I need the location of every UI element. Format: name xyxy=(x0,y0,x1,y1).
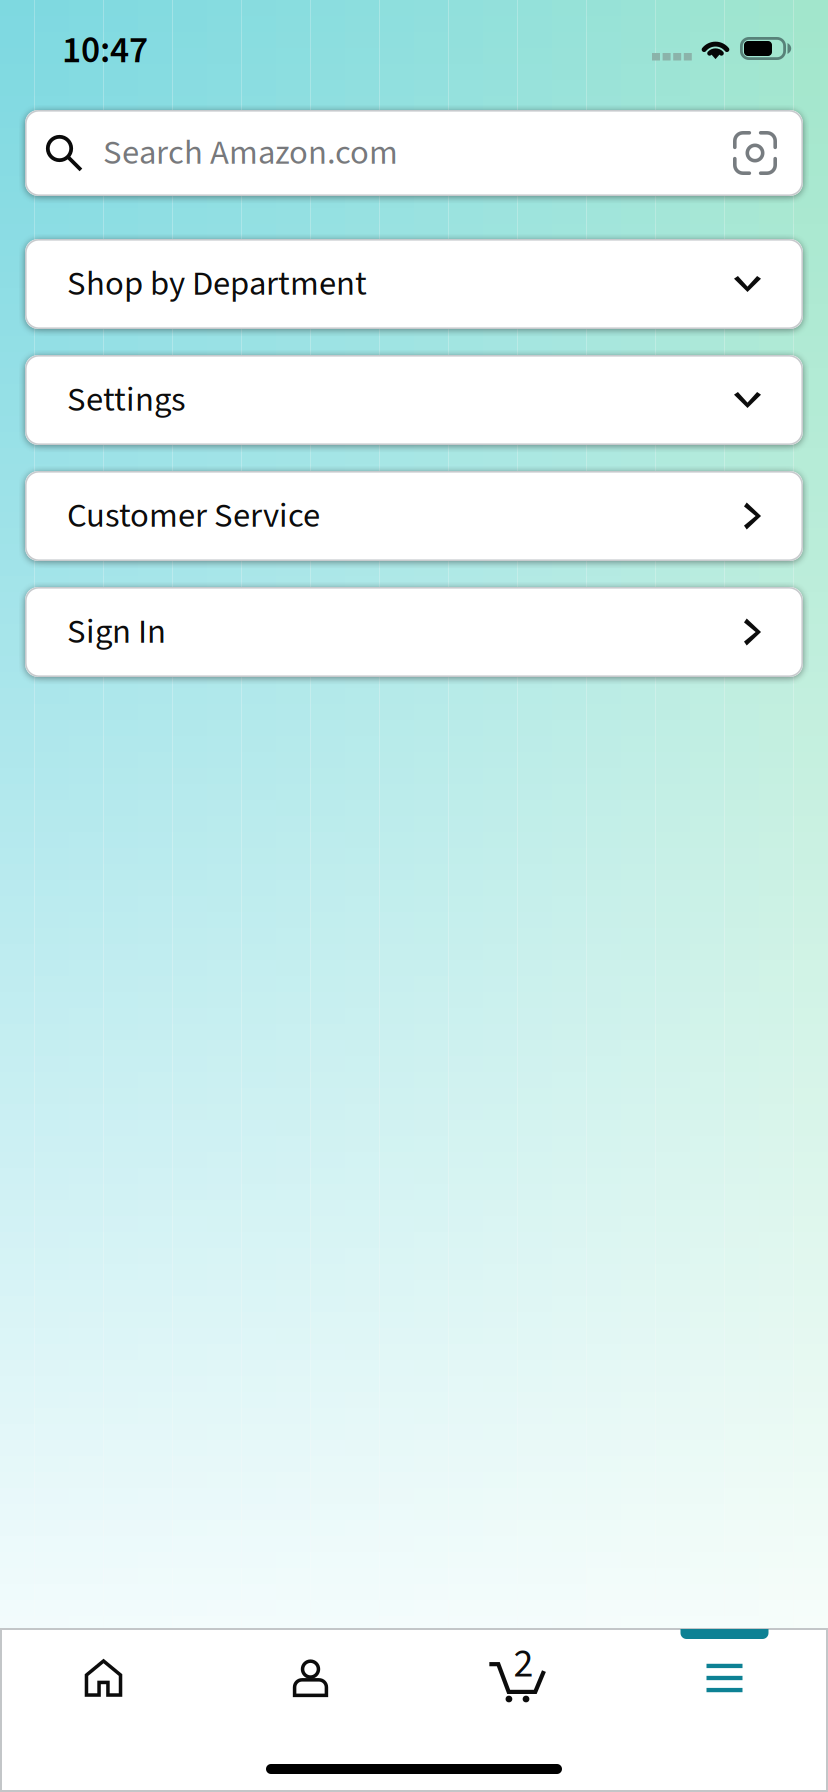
button[interactable]: Customer Service xyxy=(25,471,803,561)
staticText: Shop by Department xyxy=(67,259,367,309)
button[interactable]: Settings xyxy=(25,355,803,445)
button[interactable]: Search Amazon.com xyxy=(25,110,803,196)
staticText: 2 xyxy=(513,1635,533,1692)
button[interactable]: Your Account xyxy=(207,1639,414,1717)
button[interactable]: Home xyxy=(0,1639,207,1717)
staticText: Search Amazon.com xyxy=(103,128,398,178)
staticText: Customer Service xyxy=(67,491,320,541)
button[interactable]: Cart, 2 items xyxy=(414,1639,621,1717)
button[interactable]: Shop by Department xyxy=(25,239,803,329)
staticText: 10:47 xyxy=(62,24,148,77)
staticText: Sign In xyxy=(67,607,166,657)
staticText: Settings xyxy=(67,375,186,425)
button[interactable]: Sign In xyxy=(25,587,803,677)
button[interactable]: Menu xyxy=(621,1639,828,1717)
